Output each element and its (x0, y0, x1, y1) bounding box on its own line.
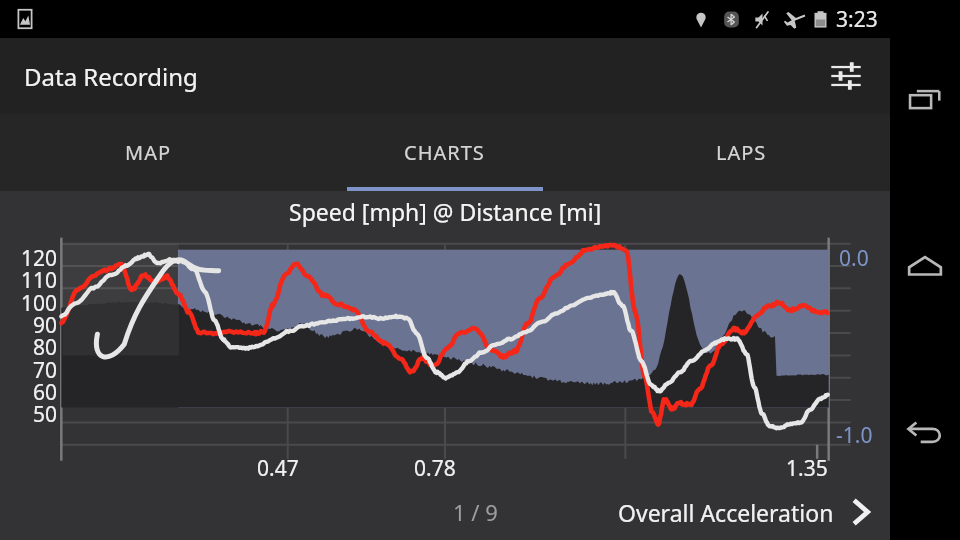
button[interactable]: Overall Acceleration (618, 484, 876, 540)
button[interactable]: LAPS (593, 114, 890, 191)
staticText: 70 (33, 356, 58, 385)
staticText: 50 (33, 400, 58, 429)
button[interactable]: Chart settings (820, 50, 872, 102)
staticText: 60 (33, 378, 58, 407)
button[interactable]: CHARTS (296, 114, 593, 191)
button[interactable]: Recent apps (894, 71, 956, 133)
staticText: -1.0 (836, 421, 873, 450)
staticText: 80 (33, 333, 58, 362)
staticText: 1 / 9 (453, 497, 498, 527)
staticText: Overall Acceleration (618, 497, 834, 528)
staticText: LAPS (716, 139, 767, 166)
staticText: 3:23 (836, 5, 878, 34)
other: Next chart (846, 497, 876, 527)
staticText: 100 (21, 289, 58, 318)
staticText: 110 (21, 266, 58, 295)
staticText: 90 (33, 311, 58, 340)
staticText: 120 (21, 244, 58, 273)
button[interactable]: Back (894, 403, 956, 465)
staticText: 0.47 (257, 454, 299, 483)
button[interactable]: MAP (0, 114, 296, 191)
button[interactable]: 1 / 9 (0, 484, 498, 540)
staticText: CHARTS (404, 139, 485, 166)
staticText: 0.78 (414, 454, 456, 483)
staticText: Speed [mph] @ Distance [mi] (289, 196, 602, 227)
staticText: Data Recording (24, 60, 198, 93)
button[interactable]: Home (894, 237, 956, 299)
staticText: 1.35 (786, 454, 828, 483)
staticText: 0.0 (839, 244, 869, 273)
staticText: MAP (125, 139, 172, 166)
